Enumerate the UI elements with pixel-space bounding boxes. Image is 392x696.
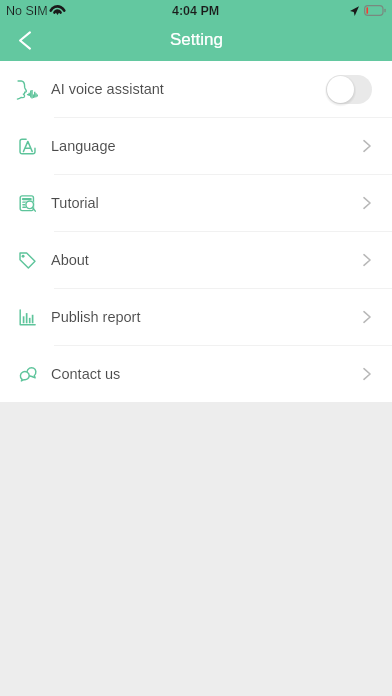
button[interactable]: Language [0,118,392,175]
staticText: Language [51,138,116,154]
staticText: About [51,252,89,268]
staticText: Tutorial [51,195,99,211]
button[interactable]: Back [0,22,52,61]
staticText: Setting [170,30,223,49]
staticText: No SIM [6,4,48,18]
staticText: Contact us [51,366,121,382]
button[interactable]: Contact us [0,346,392,402]
staticText: 4:04 PM [172,4,220,18]
button[interactable]: AI voice assistant [0,61,392,118]
button[interactable]: About [0,232,392,289]
button[interactable]: Publish report [0,289,392,346]
button[interactable]: Tutorial [0,175,392,232]
button[interactable]: Toggle AI voice assistant [326,75,372,104]
staticText: Publish report [51,309,141,325]
staticText: AI voice assistant [51,81,164,97]
